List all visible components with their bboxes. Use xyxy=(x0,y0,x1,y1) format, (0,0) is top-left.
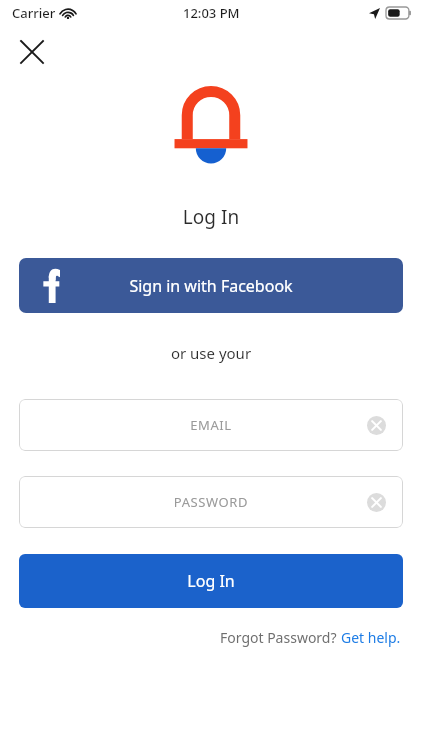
staticText: 12:03 PM xyxy=(183,4,240,22)
button[interactable]: Log In xyxy=(19,554,403,608)
staticText: Forgot Password? xyxy=(220,628,341,647)
staticText: Log In xyxy=(19,570,403,592)
button[interactable]: Sign in with Facebook xyxy=(19,258,403,313)
button[interactable]: PASSWORD xyxy=(19,476,403,528)
button[interactable]: Close xyxy=(10,30,54,74)
staticText: Log In xyxy=(0,204,422,230)
button[interactable]: EMAIL xyxy=(19,399,403,451)
staticText: Sign in with Facebook xyxy=(19,275,403,297)
staticText: Carrier xyxy=(12,4,56,22)
staticText: EMAIL xyxy=(19,416,403,434)
staticText: Get help. xyxy=(341,628,401,647)
button[interactable]: Clear EMAIL xyxy=(362,411,390,439)
staticText: or use your xyxy=(0,343,422,363)
staticText: PASSWORD xyxy=(19,493,403,511)
button[interactable]: Clear PASSWORD xyxy=(362,488,390,516)
button[interactable]: Get help. xyxy=(341,628,401,647)
